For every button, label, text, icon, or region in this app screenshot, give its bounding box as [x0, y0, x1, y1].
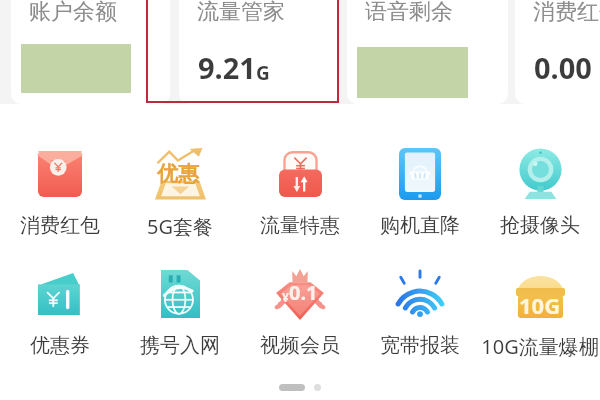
button[interactable]: 消费红包	[0, 148, 120, 238]
staticText: 0.1	[289, 279, 318, 306]
button[interactable]: 购机直降	[360, 148, 480, 238]
button[interactable]: 优惠	[120, 148, 240, 240]
staticText: 账户余额	[29, 0, 117, 26]
staticText: 流量管家	[197, 0, 285, 26]
button[interactable]: 抢摄像头	[480, 148, 600, 238]
button[interactable]: 携号入网	[120, 268, 240, 358]
button[interactable]: 流量特惠	[240, 148, 360, 238]
staticText: 宽带报装	[380, 333, 460, 358]
button[interactable]: 消费红包	[515, 0, 600, 104]
staticText: 消费红包	[20, 213, 100, 238]
button[interactable]: 语音剩余	[347, 0, 508, 104]
button[interactable]: 流量管家	[179, 0, 338, 104]
staticText: 语音剩余	[365, 0, 453, 26]
staticText: 优惠券	[30, 333, 90, 358]
staticText: 优惠	[157, 161, 199, 187]
button[interactable]: 宽带报装	[360, 268, 480, 358]
staticText: 视频会员	[260, 333, 340, 358]
staticText: 携号入网	[140, 333, 220, 358]
button[interactable]: 优惠券	[0, 268, 120, 358]
staticText: ¥	[282, 289, 289, 305]
staticText: 0.00	[534, 48, 592, 87]
staticText: 5G套餐	[147, 213, 213, 240]
staticText: 9.21	[198, 48, 256, 87]
button[interactable]: 10G	[480, 268, 600, 360]
staticText: 消费红包	[533, 0, 600, 26]
button[interactable]: ¥	[240, 268, 360, 358]
staticText: 抢摄像头	[500, 213, 580, 238]
staticText: 购机直降	[380, 213, 460, 238]
button[interactable]: 账户余额	[11, 0, 170, 104]
staticText: 10G流量爆棚	[481, 333, 599, 360]
staticText: 流量特惠	[260, 213, 340, 238]
staticText: G	[256, 60, 270, 86]
staticText: 10G	[519, 290, 561, 320]
